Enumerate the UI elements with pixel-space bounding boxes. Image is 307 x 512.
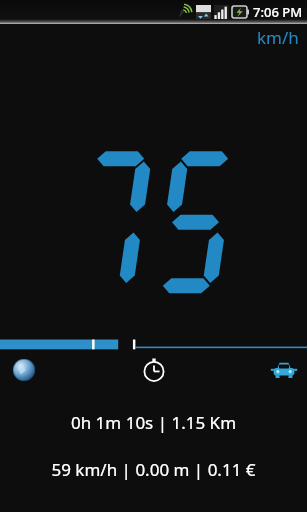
button[interactable] (0, 49, 307, 337)
button[interactable]: Stopwatch (137, 353, 171, 387)
staticText: 7:06 PM (253, 3, 303, 21)
staticText: km/h (257, 26, 299, 49)
staticText: 59 km/h | 0.00 m | 0.11 € (0, 458, 307, 481)
staticText: 0h 1m 10s | 1.15 Km (0, 411, 307, 434)
button[interactable] (0, 337, 307, 351)
button[interactable]: Map (8, 354, 40, 386)
button[interactable]: Vehicle (267, 353, 301, 387)
